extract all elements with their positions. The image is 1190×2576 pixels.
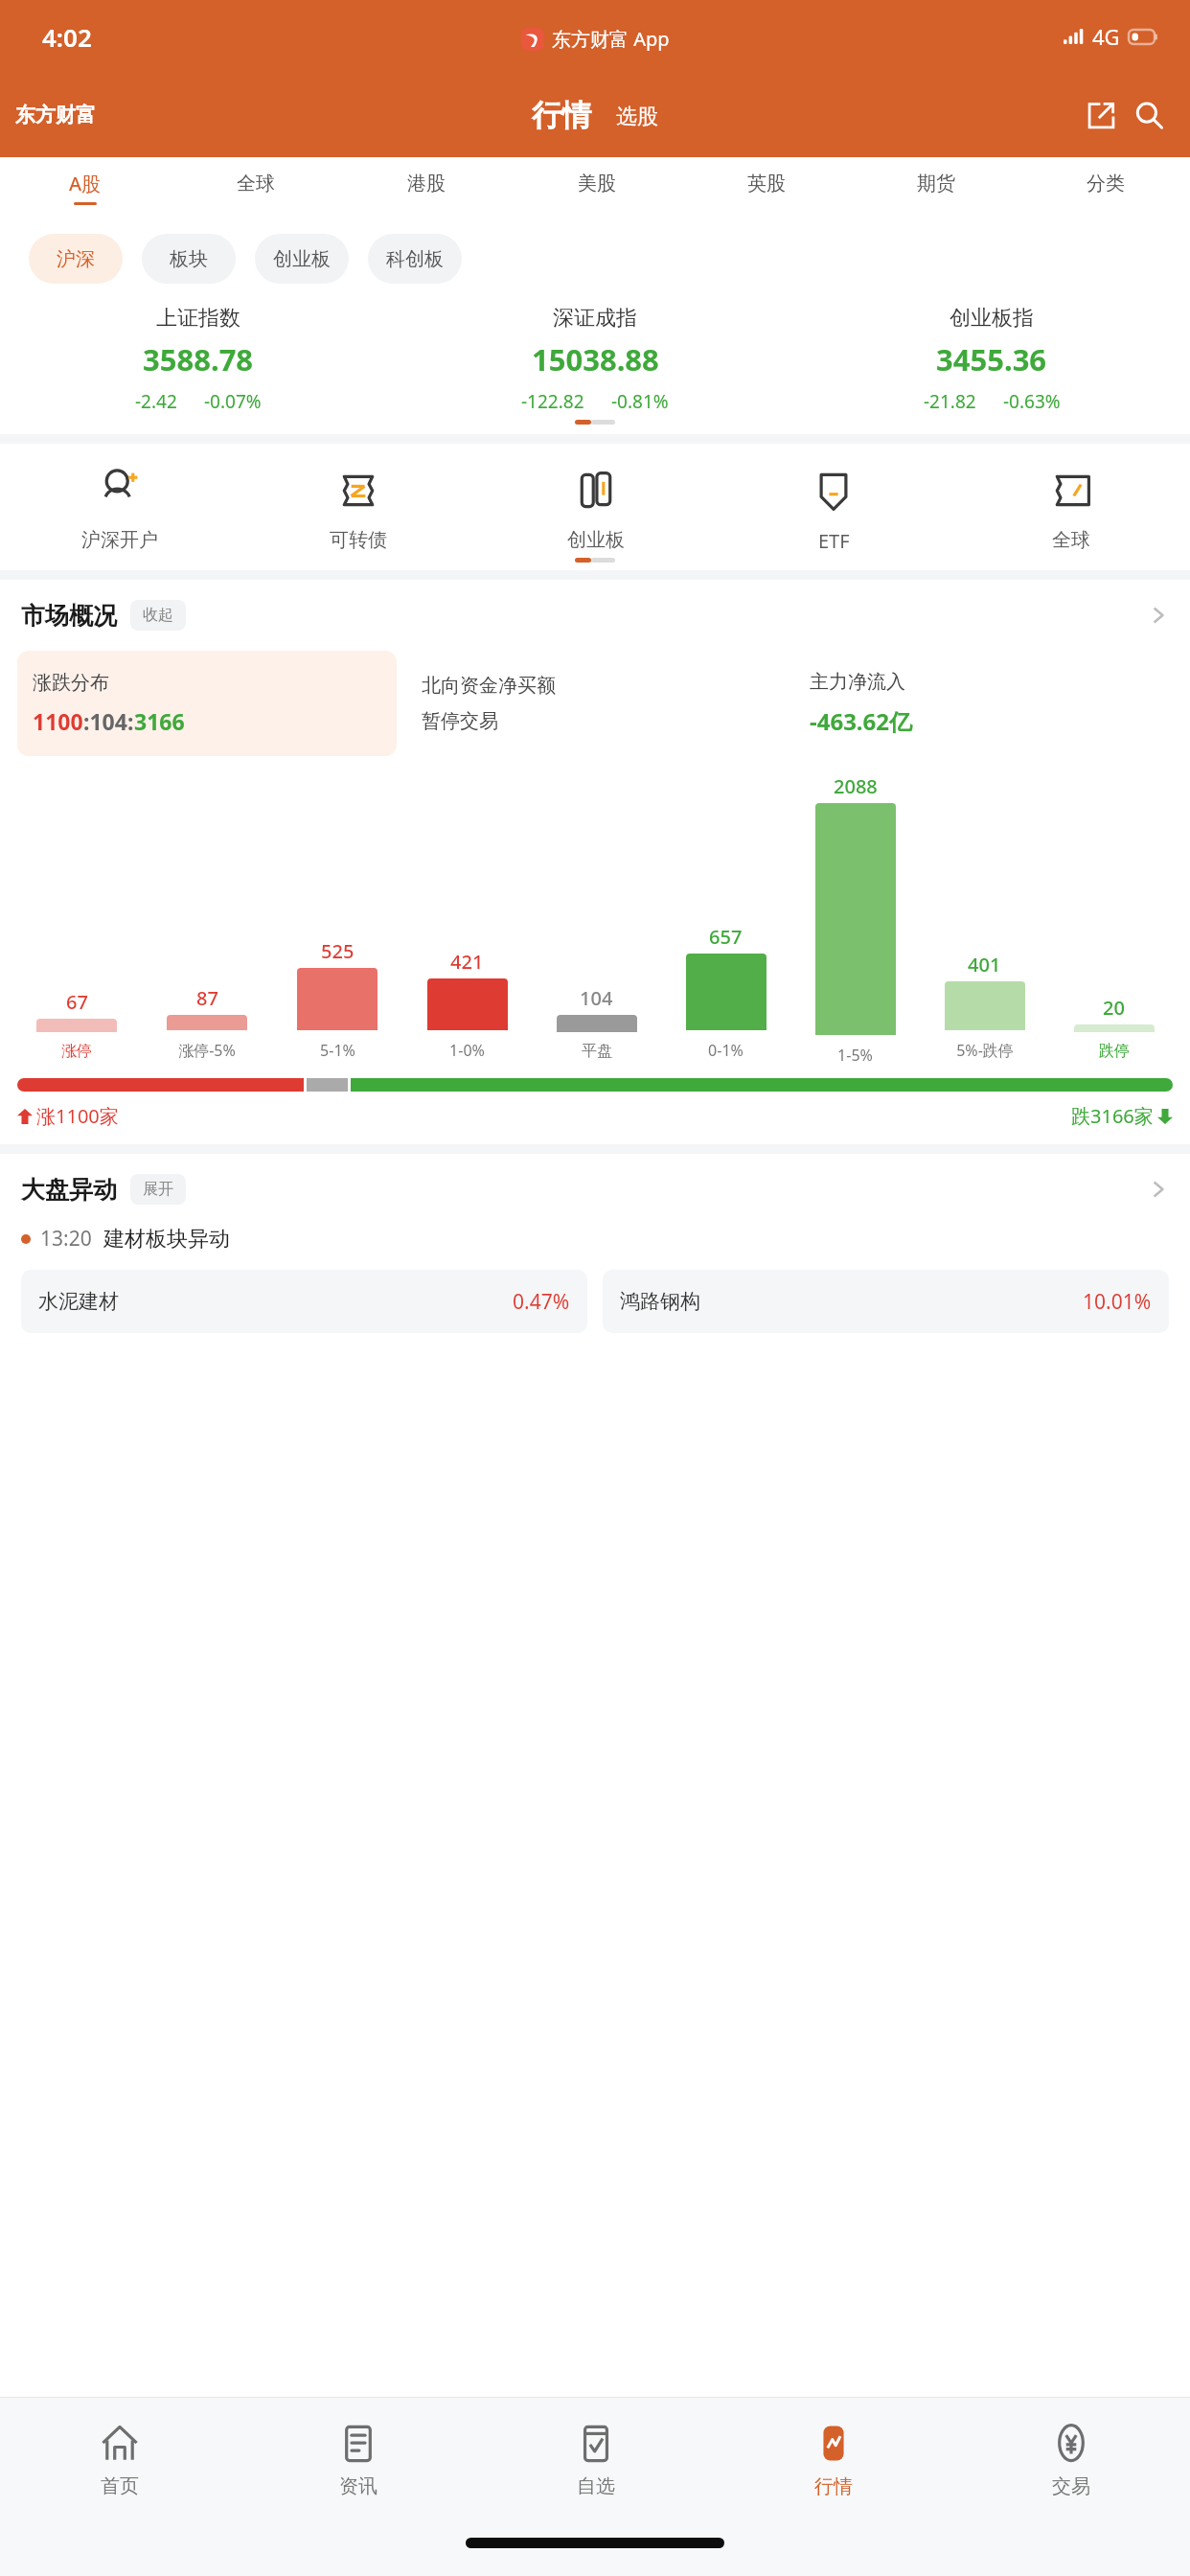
staticText: -0.63%	[1003, 389, 1061, 414]
staticText: 市场概况	[21, 601, 117, 631]
staticText: 首页	[101, 2474, 139, 2498]
staticText: 67	[66, 989, 88, 1015]
staticText: 港股	[407, 172, 446, 195]
staticText: 英股	[747, 172, 786, 195]
button[interactable]: 自选	[477, 2398, 715, 2522]
staticText: 5-1%	[320, 1040, 355, 1061]
button[interactable]: 涨跌分布	[17, 651, 397, 756]
staticText: 1-0%	[449, 1040, 485, 1061]
button[interactable]: 主力净流入	[794, 651, 1173, 756]
staticText: 15038.88	[532, 339, 659, 379]
staticText: 2088	[834, 773, 878, 799]
staticText: 全球	[237, 172, 275, 195]
button[interactable]: 行情	[532, 97, 591, 134]
staticText: 1100	[33, 706, 83, 736]
button[interactable]: 创业板	[477, 469, 715, 552]
staticText: 创业板指	[950, 305, 1034, 332]
staticText: 1-5%	[837, 1045, 873, 1061]
button[interactable]: 英股	[681, 157, 851, 218]
staticText: 水泥建材	[38, 1289, 119, 1314]
staticText: 主力净流入	[810, 670, 905, 694]
button[interactable]: 分类	[1020, 157, 1190, 218]
button[interactable]: 上证指数	[0, 305, 397, 414]
button[interactable]: 资讯	[239, 2398, 477, 2522]
staticText: 东方财富 App	[552, 26, 670, 52]
button[interactable]: Share	[1077, 91, 1125, 139]
staticText: -21.82	[924, 389, 976, 414]
staticText: 分类	[1087, 172, 1125, 195]
staticText: 涨1100家	[36, 1103, 119, 1129]
staticText: -0.07%	[204, 389, 262, 414]
staticText: 10.01%	[1083, 1288, 1152, 1316]
staticText: 4G	[1092, 22, 1120, 51]
staticText: 104	[580, 985, 613, 1011]
button[interactable]: 沪深	[29, 234, 123, 284]
button[interactable]: 北向资金净买额	[406, 651, 785, 756]
button[interactable]: 沪深开户	[0, 469, 239, 552]
staticText: 平盘	[582, 1042, 612, 1061]
staticText: 3166	[134, 706, 185, 736]
staticText: -2.42	[135, 389, 177, 414]
button[interactable]: 港股	[341, 157, 512, 218]
button[interactable]: 深证成指	[397, 305, 793, 414]
button[interactable]: 全球	[952, 469, 1190, 552]
button[interactable]: 行情	[715, 2398, 952, 2522]
staticText: 自选	[577, 2474, 615, 2498]
staticText: 0.47%	[513, 1288, 570, 1316]
button[interactable]: 科创板	[368, 234, 462, 284]
staticText: 13:20	[40, 1225, 92, 1253]
staticText: 建材板块异动	[103, 1226, 230, 1253]
staticText: 4:02	[42, 20, 92, 54]
button[interactable]: 选股	[616, 103, 658, 130]
staticText: 交易	[1052, 2474, 1090, 2498]
button[interactable]: Search	[1125, 91, 1173, 139]
button[interactable]: 可转债	[239, 469, 477, 552]
staticText: 0-1%	[708, 1040, 744, 1061]
button[interactable]: 鸿路钢构	[603, 1270, 1169, 1333]
staticText: 跌3166家	[1071, 1103, 1154, 1129]
button[interactable]: 交易	[952, 2398, 1190, 2522]
button[interactable]: 期货	[851, 157, 1020, 218]
button[interactable]: 水泥建材	[21, 1270, 587, 1333]
staticText: 期货	[917, 172, 955, 195]
staticText: 5%-跌停	[956, 1040, 1014, 1061]
staticText: 行情	[814, 2474, 853, 2498]
staticText: 沪深	[57, 247, 95, 271]
staticText: 沪深开户	[81, 528, 158, 552]
button[interactable]: 美股	[512, 157, 681, 218]
staticText: 科创板	[386, 247, 444, 271]
staticText: 涨停-5%	[178, 1040, 236, 1061]
staticText: ETF	[818, 528, 850, 554]
staticText: 鸿路钢构	[620, 1289, 700, 1314]
button[interactable]: 全球	[171, 157, 341, 218]
staticText: 可转债	[330, 528, 387, 552]
staticText: 401	[968, 952, 1001, 977]
staticText: 20	[1103, 995, 1125, 1021]
staticText: -122.82	[521, 389, 584, 414]
staticText: 大盘异动	[21, 1175, 117, 1205]
staticText: 板块	[170, 247, 208, 271]
button[interactable]: 创业板	[255, 234, 349, 284]
button[interactable]: 创业板指	[793, 305, 1190, 414]
staticText: 涨停	[61, 1042, 92, 1061]
button[interactable]: A股	[0, 157, 171, 218]
staticText: 展开	[143, 1180, 173, 1199]
staticText: 涨跌分布	[33, 671, 109, 695]
staticText: 525	[321, 938, 355, 964]
staticText: :104:	[83, 706, 134, 736]
staticText: 657	[709, 924, 743, 950]
staticText: 3455.36	[936, 339, 1047, 379]
staticText: 暂停交易	[422, 709, 498, 733]
button[interactable]: 首页	[0, 2398, 239, 2522]
staticText: 创业板	[567, 528, 625, 552]
button[interactable]: ETF	[715, 469, 952, 554]
staticText: -463.62亿	[810, 705, 913, 737]
button[interactable]: 板块	[142, 234, 236, 284]
staticText: 跌停	[1099, 1042, 1130, 1061]
staticText: 全球	[1052, 528, 1090, 552]
staticText: 深证成指	[553, 305, 637, 332]
staticText: 87	[196, 985, 218, 1011]
button[interactable]: 市场概况	[0, 580, 1190, 651]
button[interactable]: 大盘异动	[0, 1154, 1190, 1225]
staticText: 上证指数	[156, 305, 240, 332]
